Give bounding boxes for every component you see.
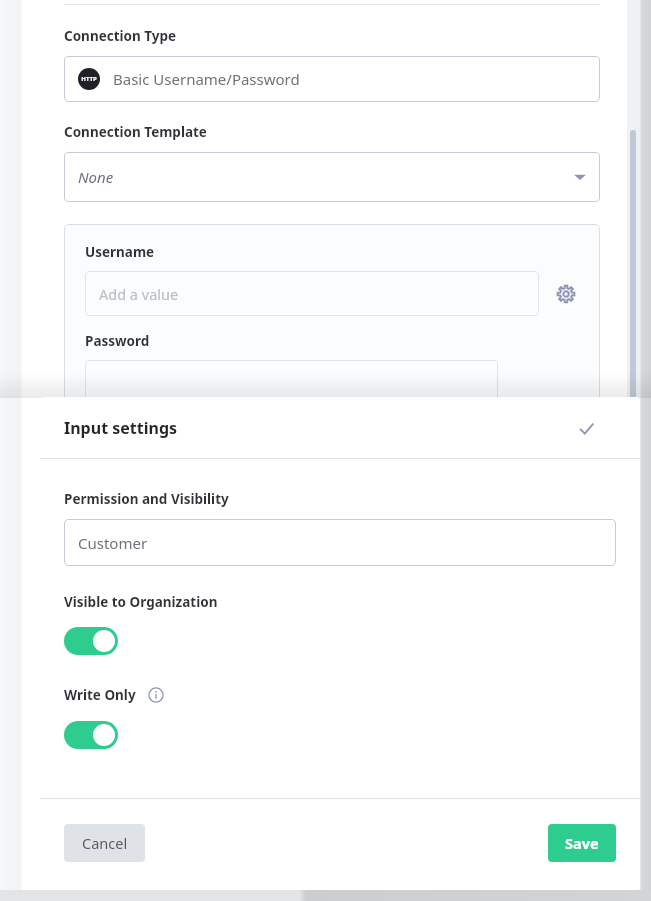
button[interactable]: None — [64, 152, 600, 202]
staticText: HTTP — [81, 75, 97, 83]
staticText: Visible to Organization — [64, 593, 218, 611]
staticText: Add a value — [99, 284, 179, 304]
staticText: Connection Type — [64, 27, 177, 45]
button[interactable]: Save — [548, 824, 616, 862]
button[interactable]: Cancel — [64, 824, 145, 862]
button[interactable]: Toggle — [64, 721, 118, 749]
staticText: Basic Username/Password — [113, 69, 300, 89]
staticText: Connection Template — [64, 123, 207, 141]
button[interactable]: Customer — [64, 519, 616, 566]
staticText: Save — [565, 833, 599, 853]
staticText: Customer — [78, 533, 148, 553]
button[interactable]: More information — [146, 685, 166, 705]
button[interactable]: Confirm — [572, 414, 600, 442]
button[interactable]: HTTP — [64, 56, 600, 102]
staticText: Cancel — [82, 833, 128, 853]
button[interactable]: Add a value — [85, 271, 539, 316]
staticText: Input settings — [64, 417, 178, 439]
staticText: Password — [85, 332, 150, 350]
staticText: Username — [85, 243, 155, 261]
staticText: Write Only — [64, 686, 136, 704]
button[interactable]: Toggle — [64, 627, 118, 655]
button[interactable]: Username settings — [553, 281, 579, 307]
staticText: None — [78, 167, 114, 187]
staticText: Permission and Visibility — [64, 490, 229, 508]
